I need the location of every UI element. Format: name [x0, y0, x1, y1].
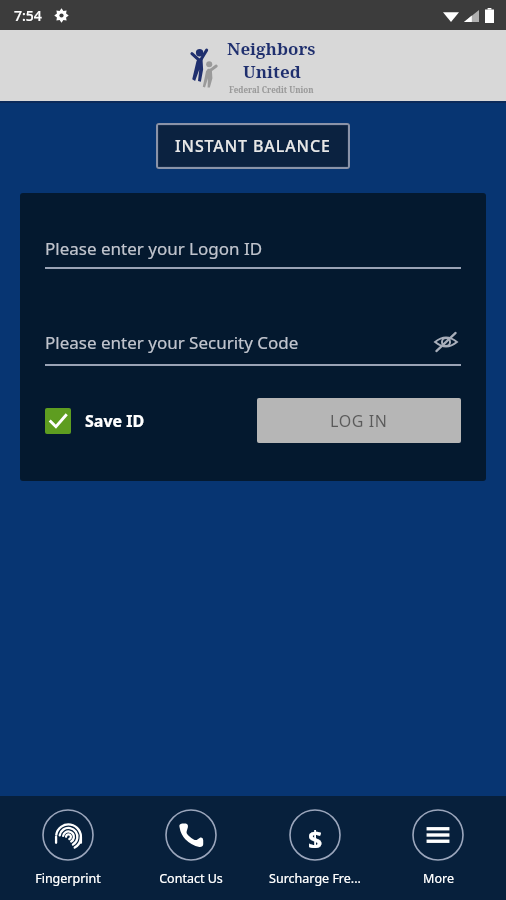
button[interactable]: Surcharge Free ATMs: [260, 805, 370, 891]
button[interactable]: Save ID: [45, 408, 145, 434]
staticText: Federal Credit Union: [229, 84, 314, 95]
staticText: Surcharge Fre...: [269, 870, 361, 887]
staticText: LOG IN: [330, 410, 388, 432]
staticText: Please enter your Logon ID: [45, 237, 263, 260]
other: More: [425, 822, 451, 848]
other: Contact Us: [178, 822, 204, 848]
staticText: United: [243, 60, 301, 83]
staticText: Contact Us: [159, 870, 223, 887]
staticText: Please enter your Security Code: [45, 331, 299, 354]
other: Fingerprint: [55, 822, 82, 849]
staticText: Neighbors: [227, 37, 316, 60]
staticText: INSTANT BALANCE: [175, 135, 331, 157]
button[interactable]: Fingerprint: [13, 805, 123, 891]
other: Surcharge Free ATMs: [302, 822, 328, 848]
button[interactable]: INSTANT BALANCE: [156, 123, 350, 169]
staticText: Fingerprint: [35, 870, 101, 887]
staticText: $: [308, 822, 323, 848]
staticText: Save ID: [85, 410, 145, 432]
button[interactable]: More: [383, 805, 493, 891]
button[interactable]: LOG IN: [257, 398, 461, 443]
staticText: More: [423, 870, 454, 887]
button[interactable]: Please enter your Logon ID: [45, 237, 461, 269]
button[interactable]: Show password: [431, 327, 461, 357]
staticText: 7:54: [14, 6, 42, 25]
button[interactable]: Please enter your Security Code: [45, 327, 461, 366]
button[interactable]: Contact Us: [136, 805, 246, 891]
